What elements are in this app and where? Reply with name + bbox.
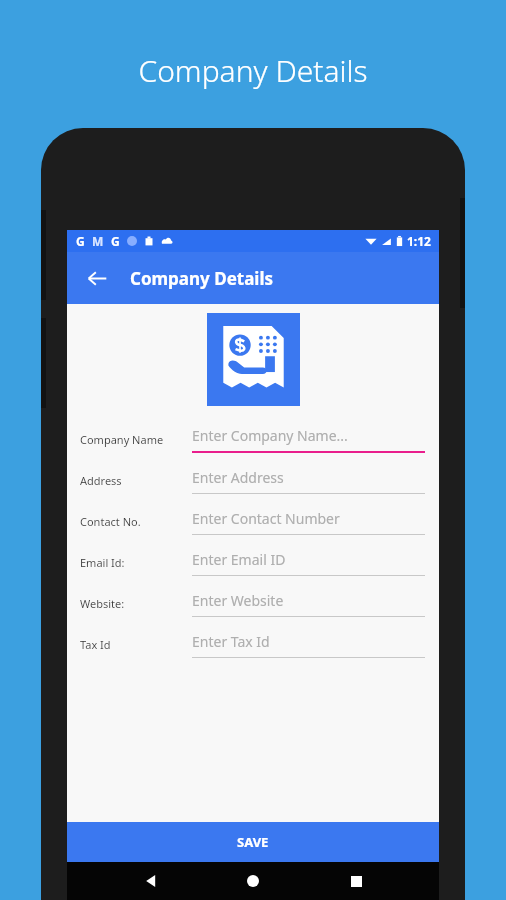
staticText: Enter Email ID [192,550,286,569]
button[interactable]: Contact No. [67,501,439,542]
staticText: Enter Address [192,468,284,487]
staticText: Website: [80,596,125,611]
button[interactable]: Tax Id [67,624,439,665]
button[interactable]: Back [132,862,170,900]
staticText: Address [80,473,122,488]
button[interactable]: SAVE [67,822,439,862]
staticText: Company Details [130,267,274,290]
button[interactable]: Company Name [67,419,439,460]
staticText: SAVE [237,833,269,851]
button[interactable]: Email Id: [67,542,439,583]
button[interactable]: Website: [67,583,439,624]
button[interactable]: Address [67,460,439,501]
staticText: Company Details [138,50,368,91]
staticText: Enter Contact Number [192,509,340,528]
button[interactable]: Home [234,862,272,900]
staticText: G [111,233,120,249]
staticText: G [76,233,85,249]
staticText: Enter Website [192,591,284,610]
staticText: Enter Tax Id [192,632,270,651]
staticText: Email Id: [80,555,125,570]
button[interactable]: Back [77,258,117,298]
staticText: Enter Company Name... [192,426,348,445]
staticText: 1:12 [407,233,431,249]
staticText: Contact No. [80,514,141,529]
staticText: Tax Id [80,637,111,652]
staticText: Company Name [80,432,164,447]
button[interactable]: Recent apps [337,862,375,900]
staticText: M [92,233,104,249]
